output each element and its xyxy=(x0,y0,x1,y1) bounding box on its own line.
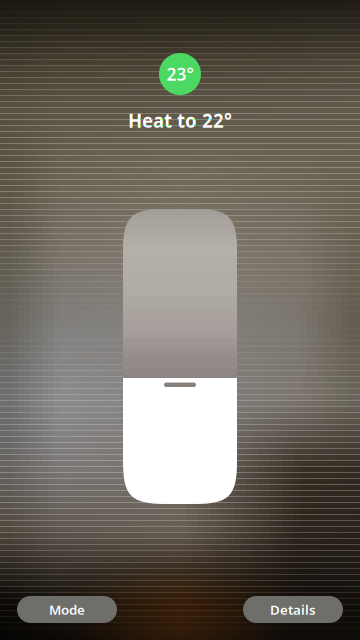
button[interactable]: Mode xyxy=(17,596,117,623)
staticText: Details xyxy=(270,601,316,618)
staticText: Heat to 22° xyxy=(128,108,232,133)
staticText: Mode xyxy=(49,601,85,618)
button[interactable]: Details xyxy=(243,596,343,623)
staticText: 23° xyxy=(166,62,193,85)
